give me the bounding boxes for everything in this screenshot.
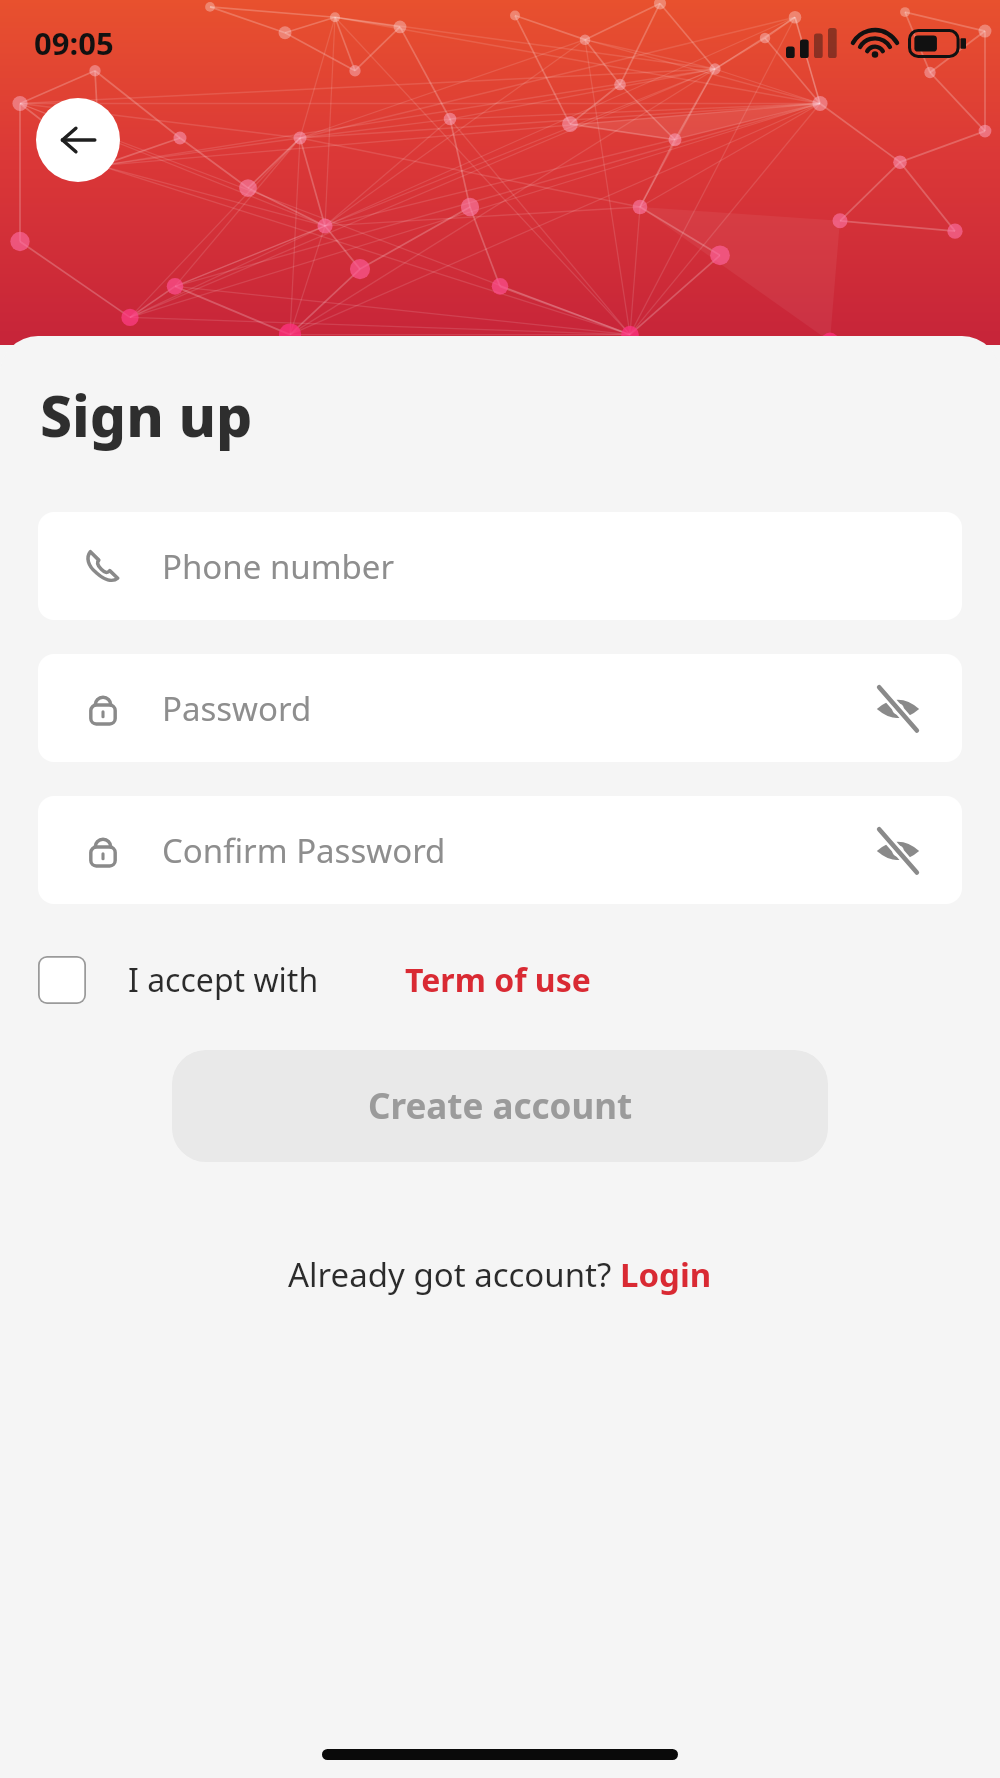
button[interactable]: Phone number xyxy=(38,512,962,620)
staticText: Confirm Password xyxy=(162,828,446,873)
staticText: Sign up xyxy=(40,376,253,454)
staticText: Phone number xyxy=(162,544,395,589)
staticText: Term of use xyxy=(405,958,591,1002)
staticText: Login xyxy=(620,1252,712,1297)
staticText: 09:05 xyxy=(34,22,114,64)
staticText: Already got account? xyxy=(288,1252,620,1297)
button[interactable]: Password xyxy=(38,654,962,762)
button[interactable]: Show password xyxy=(868,820,928,880)
button[interactable] xyxy=(38,956,86,1004)
button[interactable]: Term of use xyxy=(405,958,591,1002)
staticText: Password xyxy=(162,686,312,731)
button[interactable]: Show password xyxy=(868,678,928,738)
button[interactable]: Confirm Password xyxy=(38,796,962,904)
button[interactable]: Create account xyxy=(172,1050,828,1162)
button[interactable]: Login xyxy=(620,1252,712,1297)
staticText: I accept with xyxy=(128,958,319,1002)
button[interactable]: Back xyxy=(36,98,120,182)
staticText: Create account xyxy=(368,1082,633,1130)
